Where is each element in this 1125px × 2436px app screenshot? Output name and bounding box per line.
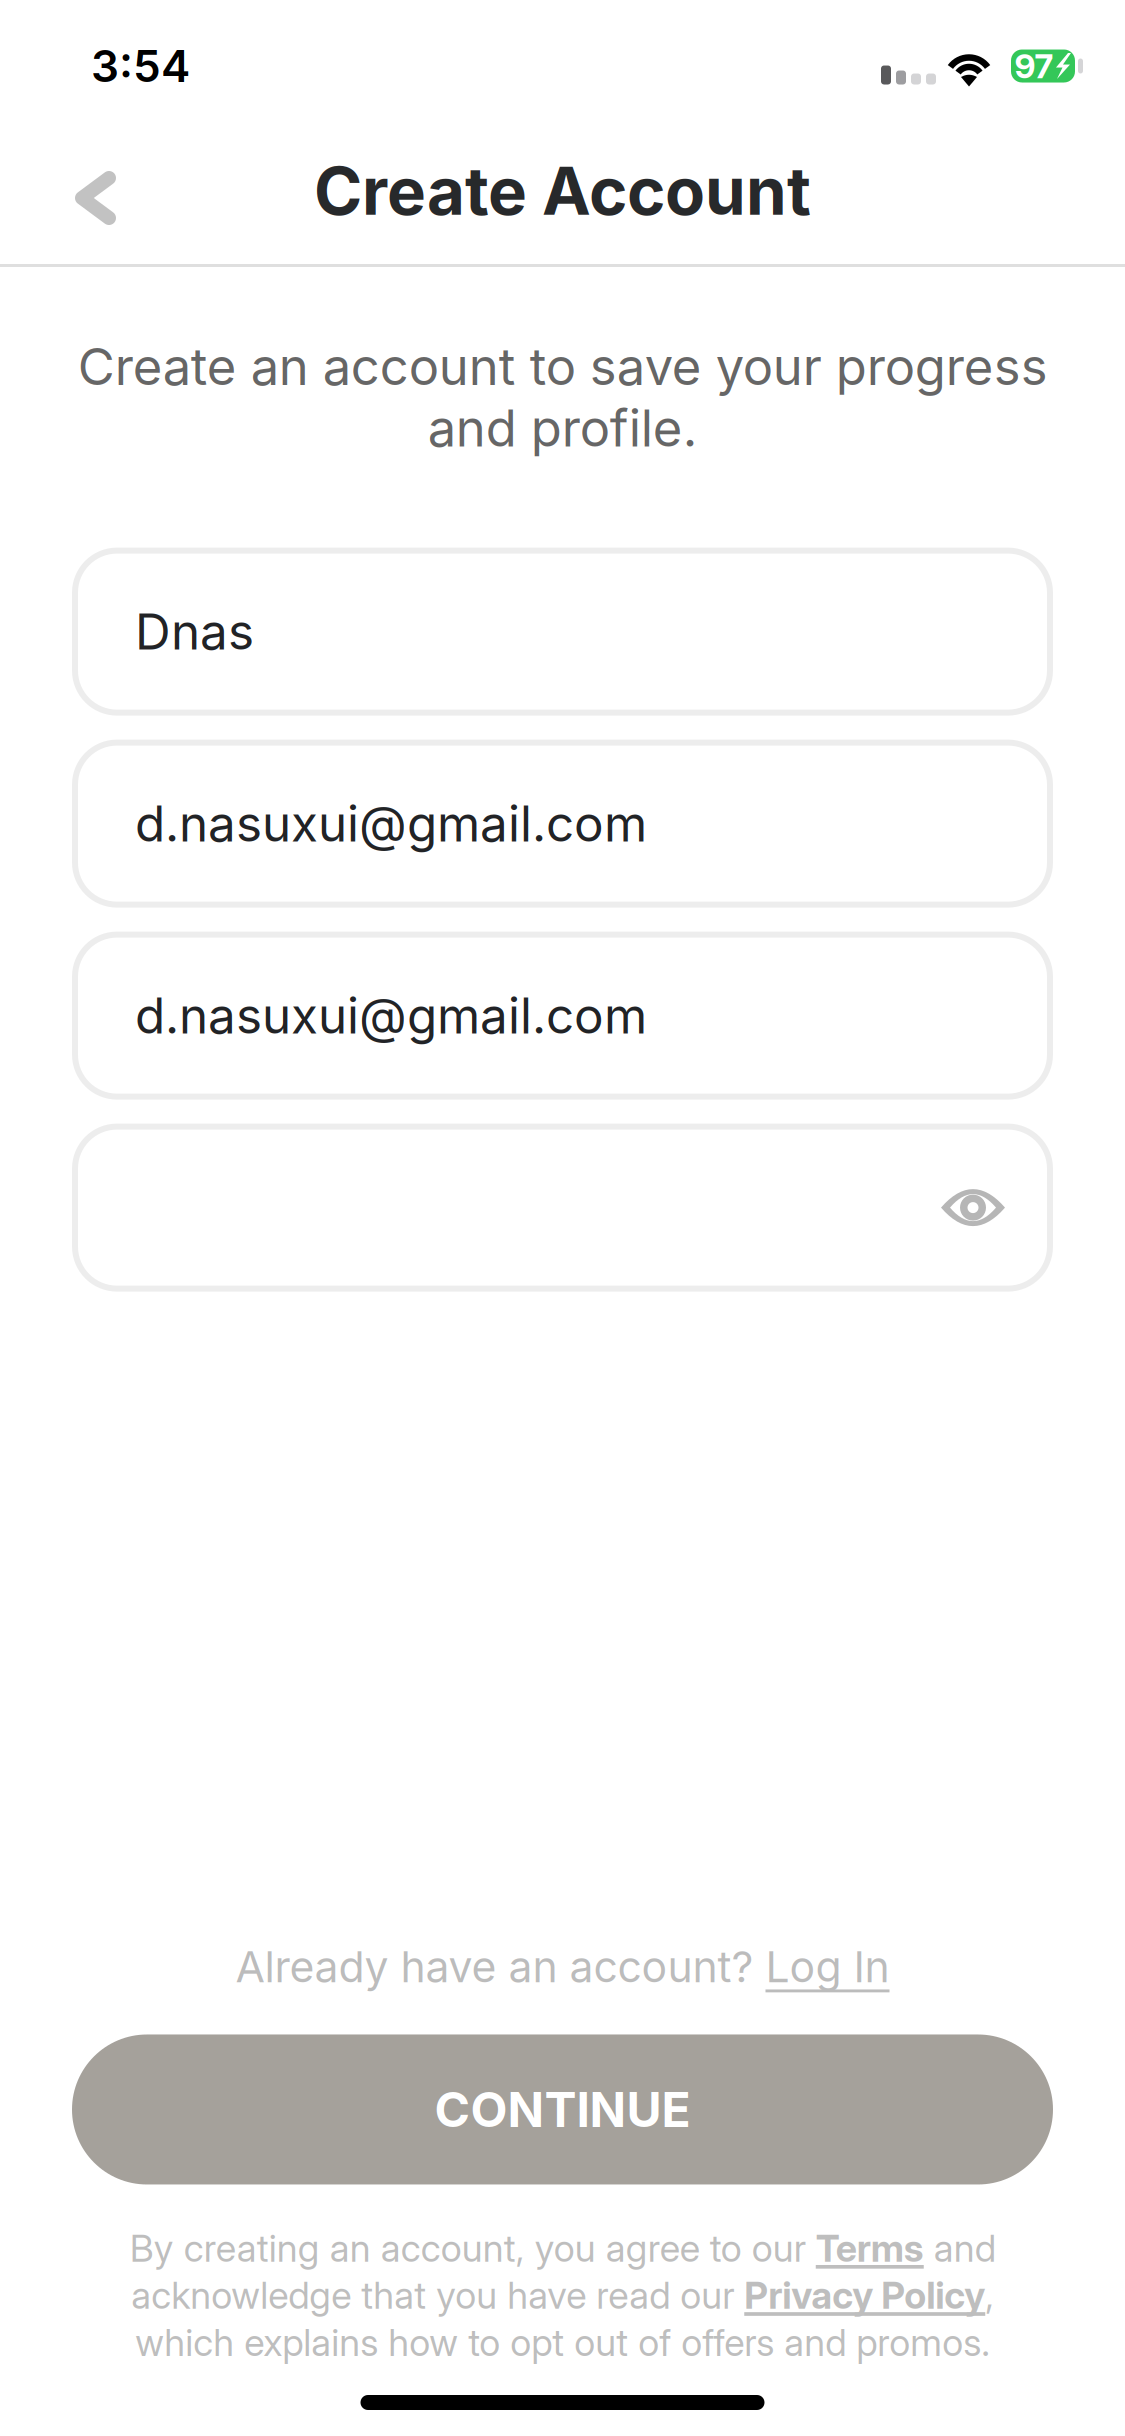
button[interactable]: CONTINUE — [72, 2034, 1053, 2184]
button[interactable]: Dnas — [75, 551, 1050, 713]
button[interactable]: Already have an account? — [235, 1923, 889, 2010]
button[interactable]: Back — [48, 143, 143, 253]
staticText: Dnas — [135, 602, 254, 661]
staticText: 3:54 — [91, 39, 190, 93]
staticText: CONTINUE — [434, 2080, 690, 2138]
button[interactable] — [75, 1127, 1050, 1289]
staticText: d.nasuxui@gmail.com — [135, 986, 647, 1045]
staticText: Create an account to save your progress … — [77, 336, 1047, 459]
staticText: By creating an account, you agree to our… — [129, 2225, 995, 2365]
button[interactable]: d.nasuxui@gmail.com — [75, 935, 1050, 1097]
staticText: Create Account — [314, 151, 811, 230]
staticText: Log In — [765, 1941, 889, 1992]
staticText: d.nasuxui@gmail.com — [135, 794, 647, 853]
button[interactable]: d.nasuxui@gmail.com — [75, 743, 1050, 905]
staticText: 97 — [1014, 46, 1053, 86]
staticText: Already have an account? — [235, 1941, 765, 1992]
